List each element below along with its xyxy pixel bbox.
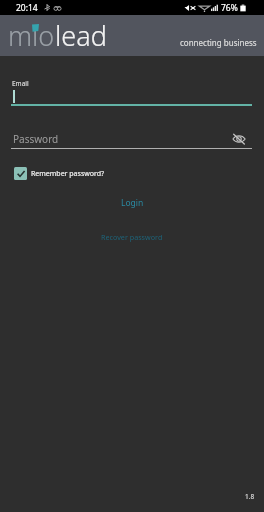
button[interactable]: Email input [11, 75, 252, 107]
button[interactable]: Recover password [89, 229, 175, 245]
staticText: mio [8, 17, 55, 54]
staticText: 20:14 [16, 2, 38, 14]
staticText: 1.8 [245, 492, 255, 501]
button[interactable]: Show password [230, 131, 247, 146]
staticText: Remember password? [31, 169, 105, 179]
button[interactable]: Remember password? [14, 167, 105, 180]
staticText: Recover password [101, 232, 163, 242]
staticText: connecting business [180, 37, 257, 48]
button[interactable]: Password input [11, 128, 252, 150]
staticText: 76% [221, 2, 238, 14]
button[interactable]: Login [109, 194, 156, 212]
staticText: Login [121, 197, 144, 209]
staticText: Email [12, 79, 29, 88]
staticText: lead [55, 17, 107, 54]
staticText: Password [13, 132, 59, 146]
